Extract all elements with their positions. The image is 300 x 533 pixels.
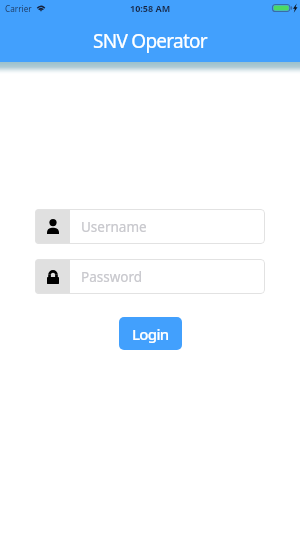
staticText: Password — [81, 268, 143, 286]
staticText: Login — [132, 324, 169, 344]
button[interactable]: Login — [119, 317, 182, 350]
button[interactable]: Username — [35, 209, 265, 244]
button[interactable]: Password — [35, 259, 265, 294]
other: Username — [35, 209, 70, 244]
staticText: Username — [81, 218, 147, 236]
staticText: SNV Operator — [0, 28, 300, 54]
other: Password — [35, 259, 70, 294]
staticText: 10:58 AM — [130, 2, 171, 14]
staticText: Carrier — [5, 3, 32, 14]
